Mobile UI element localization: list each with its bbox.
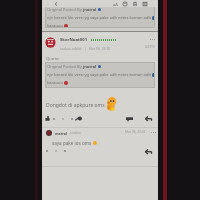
staticText: Original Posted By: [47, 64, 83, 69]
staticText: njir berarti klo versi yg saya pake udh …: [47, 72, 151, 77]
button[interactable]: Back: [53, 1, 59, 7]
staticText: Original Posted By: [47, 7, 83, 12]
button[interactable]: History: [122, 1, 128, 7]
button[interactable]: More options: [149, 37, 155, 41]
button[interactable]: Pages: [142, 1, 148, 7]
staticText: Dongdot di apkpure oms: [46, 102, 105, 109]
staticText: saya pake ios oms: [52, 140, 92, 146]
staticText: jnatral: [83, 7, 97, 12]
button[interactable]: Like: [45, 116, 50, 121]
button[interactable]: Reply: [145, 149, 152, 155]
button[interactable]: Quote: [126, 116, 133, 122]
button[interactable]: More options: [150, 130, 156, 134]
staticText: kaskus addict | Mar 06, 23:30: [60, 46, 111, 51]
staticText: newbie: [70, 131, 81, 135]
staticText: aA: [113, 2, 118, 7]
button[interactable]: Award: [75, 116, 82, 121]
button[interactable]: Reply: [145, 116, 152, 122]
staticText: njir berarti klo versi yg saya pake udh …: [47, 15, 151, 20]
staticText: kacauuu: [47, 23, 63, 28]
staticText: jnatral: [83, 64, 97, 69]
button[interactable]: Bookmark: [132, 1, 138, 7]
staticText: kacauuu: [47, 80, 63, 85]
staticText: Mar 06, 23:43: [125, 130, 146, 134]
button[interactable]: Text size: [112, 1, 118, 7]
staticText: #2316: [145, 44, 155, 49]
staticText: matral: [55, 131, 67, 136]
staticText: SkorNuat001: [60, 37, 88, 43]
staticText: Quote:: [46, 56, 60, 62]
